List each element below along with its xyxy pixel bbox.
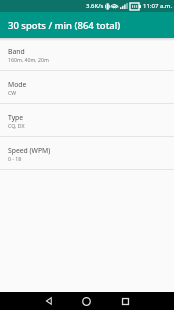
staticText: Speed (WPM) xyxy=(8,146,51,155)
staticText: Band xyxy=(8,47,25,56)
button[interactable]: Home xyxy=(67,292,106,310)
staticText: 160m, 40m, 20m xyxy=(8,56,49,63)
button[interactable]: Type xyxy=(0,104,174,137)
staticText: Type xyxy=(8,113,24,122)
staticText: 30 spots / min (864 total) xyxy=(8,19,121,32)
staticText: 3.6K/s xyxy=(86,2,104,10)
button[interactable]: Recents xyxy=(106,292,145,310)
button[interactable]: Speed (WPM) xyxy=(0,137,174,170)
button[interactable]: Band xyxy=(0,38,174,71)
staticText: CW xyxy=(8,89,17,96)
staticText: 11:07 a.m. xyxy=(143,2,173,10)
staticText: Mode xyxy=(8,80,27,89)
button[interactable]: Back xyxy=(30,292,67,310)
button[interactable]: Mode xyxy=(0,71,174,104)
staticText: 0 - 18 xyxy=(8,155,22,162)
staticText: CQ, DX xyxy=(8,122,25,129)
